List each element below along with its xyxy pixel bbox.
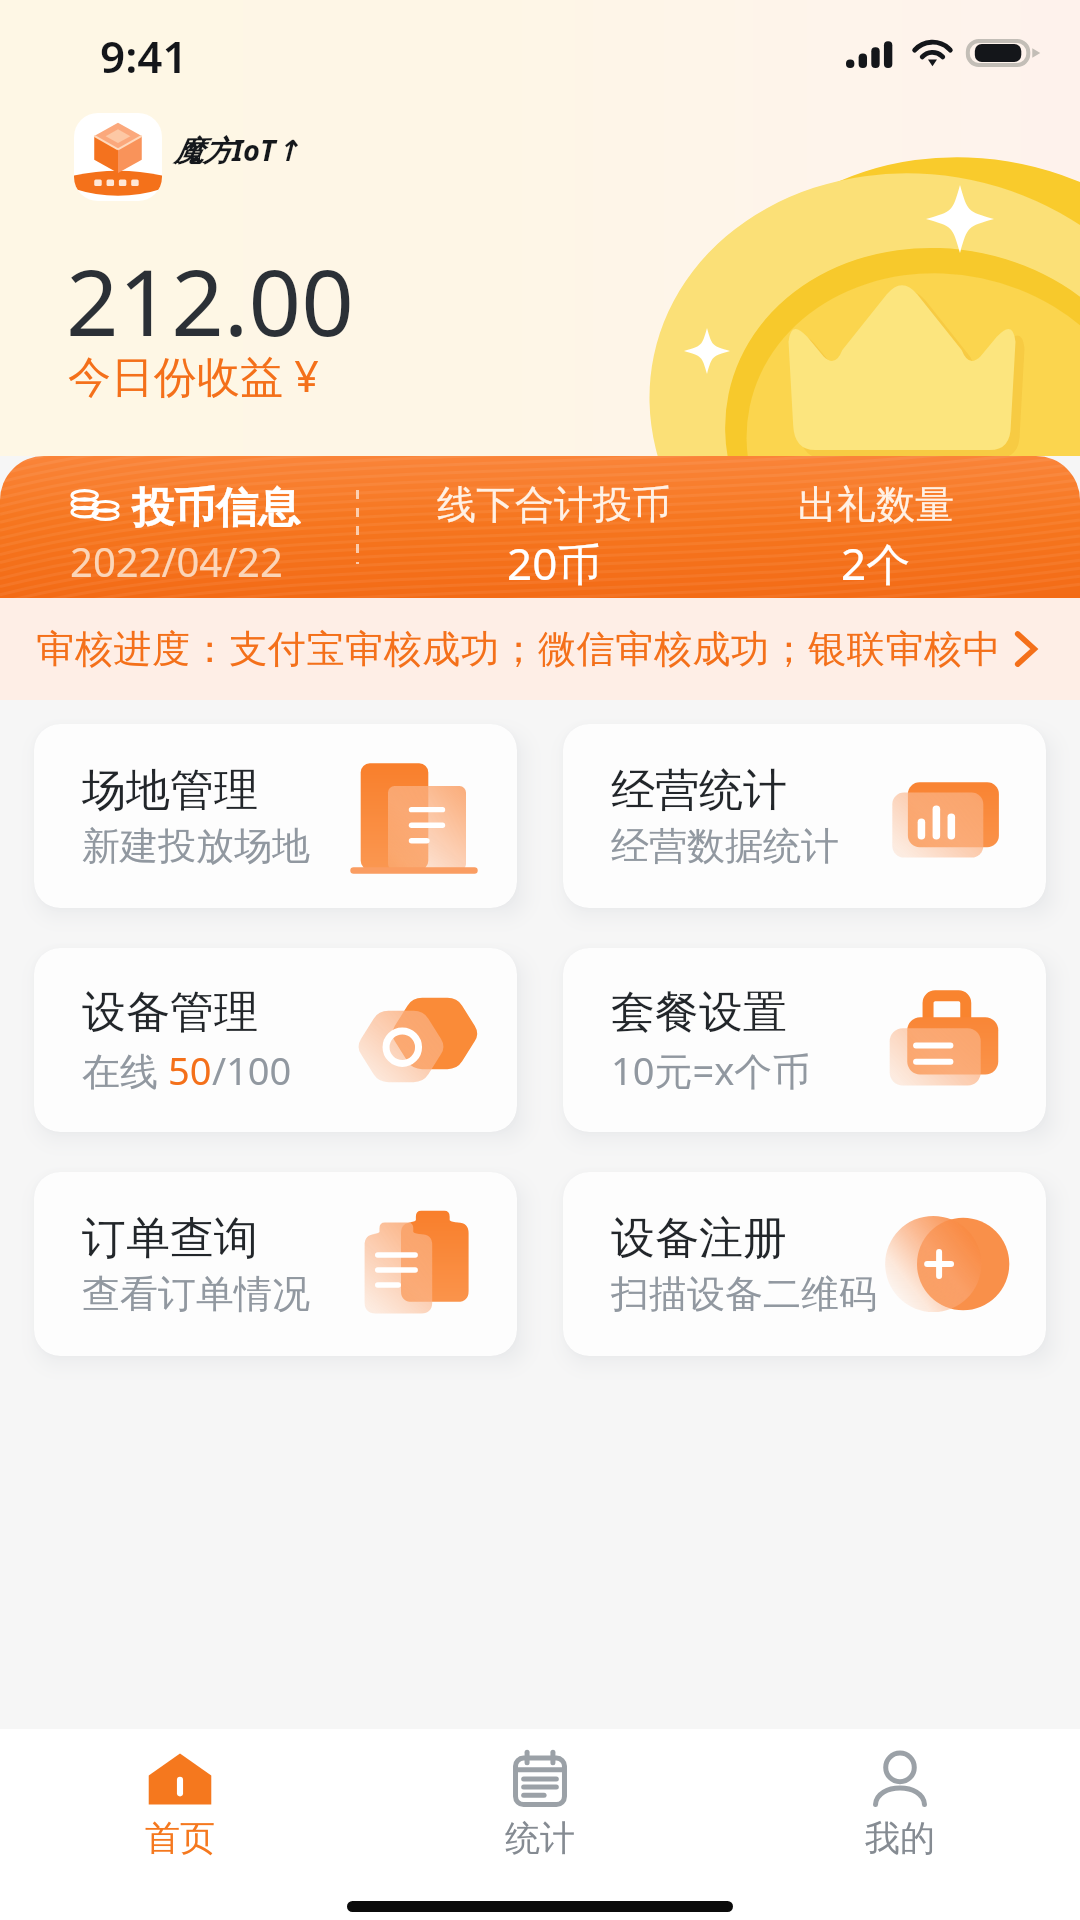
staticText: 订单查询	[82, 1211, 258, 1266]
button[interactable]: 设备管理	[34, 948, 517, 1132]
staticText: 查看订单情况	[82, 1270, 310, 1318]
other: 查看审核进度	[1001, 622, 1050, 676]
staticText: 9:41	[100, 26, 188, 86]
button[interactable]: 首页	[0, 1735, 360, 1875]
staticText: 在线	[82, 1044, 168, 1096]
staticText: 出礼数量	[798, 480, 954, 529]
staticText: 212.00	[66, 238, 354, 363]
staticText: /100	[212, 1044, 292, 1096]
staticText: 场地管理	[82, 763, 258, 818]
staticText: 10元=x个币	[611, 1044, 811, 1096]
staticText: 2022/04/22	[70, 534, 283, 588]
staticText: 设备注册	[611, 1211, 787, 1266]
button[interactable]: 场地管理	[34, 724, 517, 908]
staticText: 20币	[507, 533, 602, 593]
staticText: 线下合计投币	[437, 480, 671, 529]
staticText: 投币信息	[132, 482, 300, 535]
staticText: 2个	[841, 533, 911, 593]
button[interactable]: 审核进度：支付宝审核成功；微信审核成功；银联审核中	[0, 598, 1080, 700]
staticText: 魔方IoT↑	[174, 130, 300, 170]
staticText: 首页	[145, 1816, 215, 1860]
button[interactable]: 套餐设置	[563, 948, 1046, 1132]
staticText: 扫描设备二维码	[611, 1270, 877, 1318]
staticText: 套餐设置	[611, 985, 787, 1040]
staticText: 50	[168, 1044, 212, 1096]
staticText: 经营统计	[611, 763, 787, 818]
staticText: 今日份收益 ¥	[68, 346, 319, 405]
staticText: 审核进度：支付宝审核成功；微信审核成功；银联审核中	[36, 625, 1001, 673]
button[interactable]: 订单查询	[34, 1172, 517, 1356]
staticText: 统计	[505, 1816, 575, 1860]
button[interactable]: 经营统计	[563, 724, 1046, 908]
button[interactable]: 我的	[720, 1735, 1080, 1875]
staticText: 经营数据统计	[611, 822, 839, 870]
button[interactable]: 统计	[360, 1735, 720, 1875]
button[interactable]: 设备注册	[563, 1172, 1046, 1356]
staticText: 新建投放场地	[82, 822, 310, 870]
staticText: 设备管理	[82, 985, 258, 1040]
staticText: 我的	[865, 1816, 935, 1860]
